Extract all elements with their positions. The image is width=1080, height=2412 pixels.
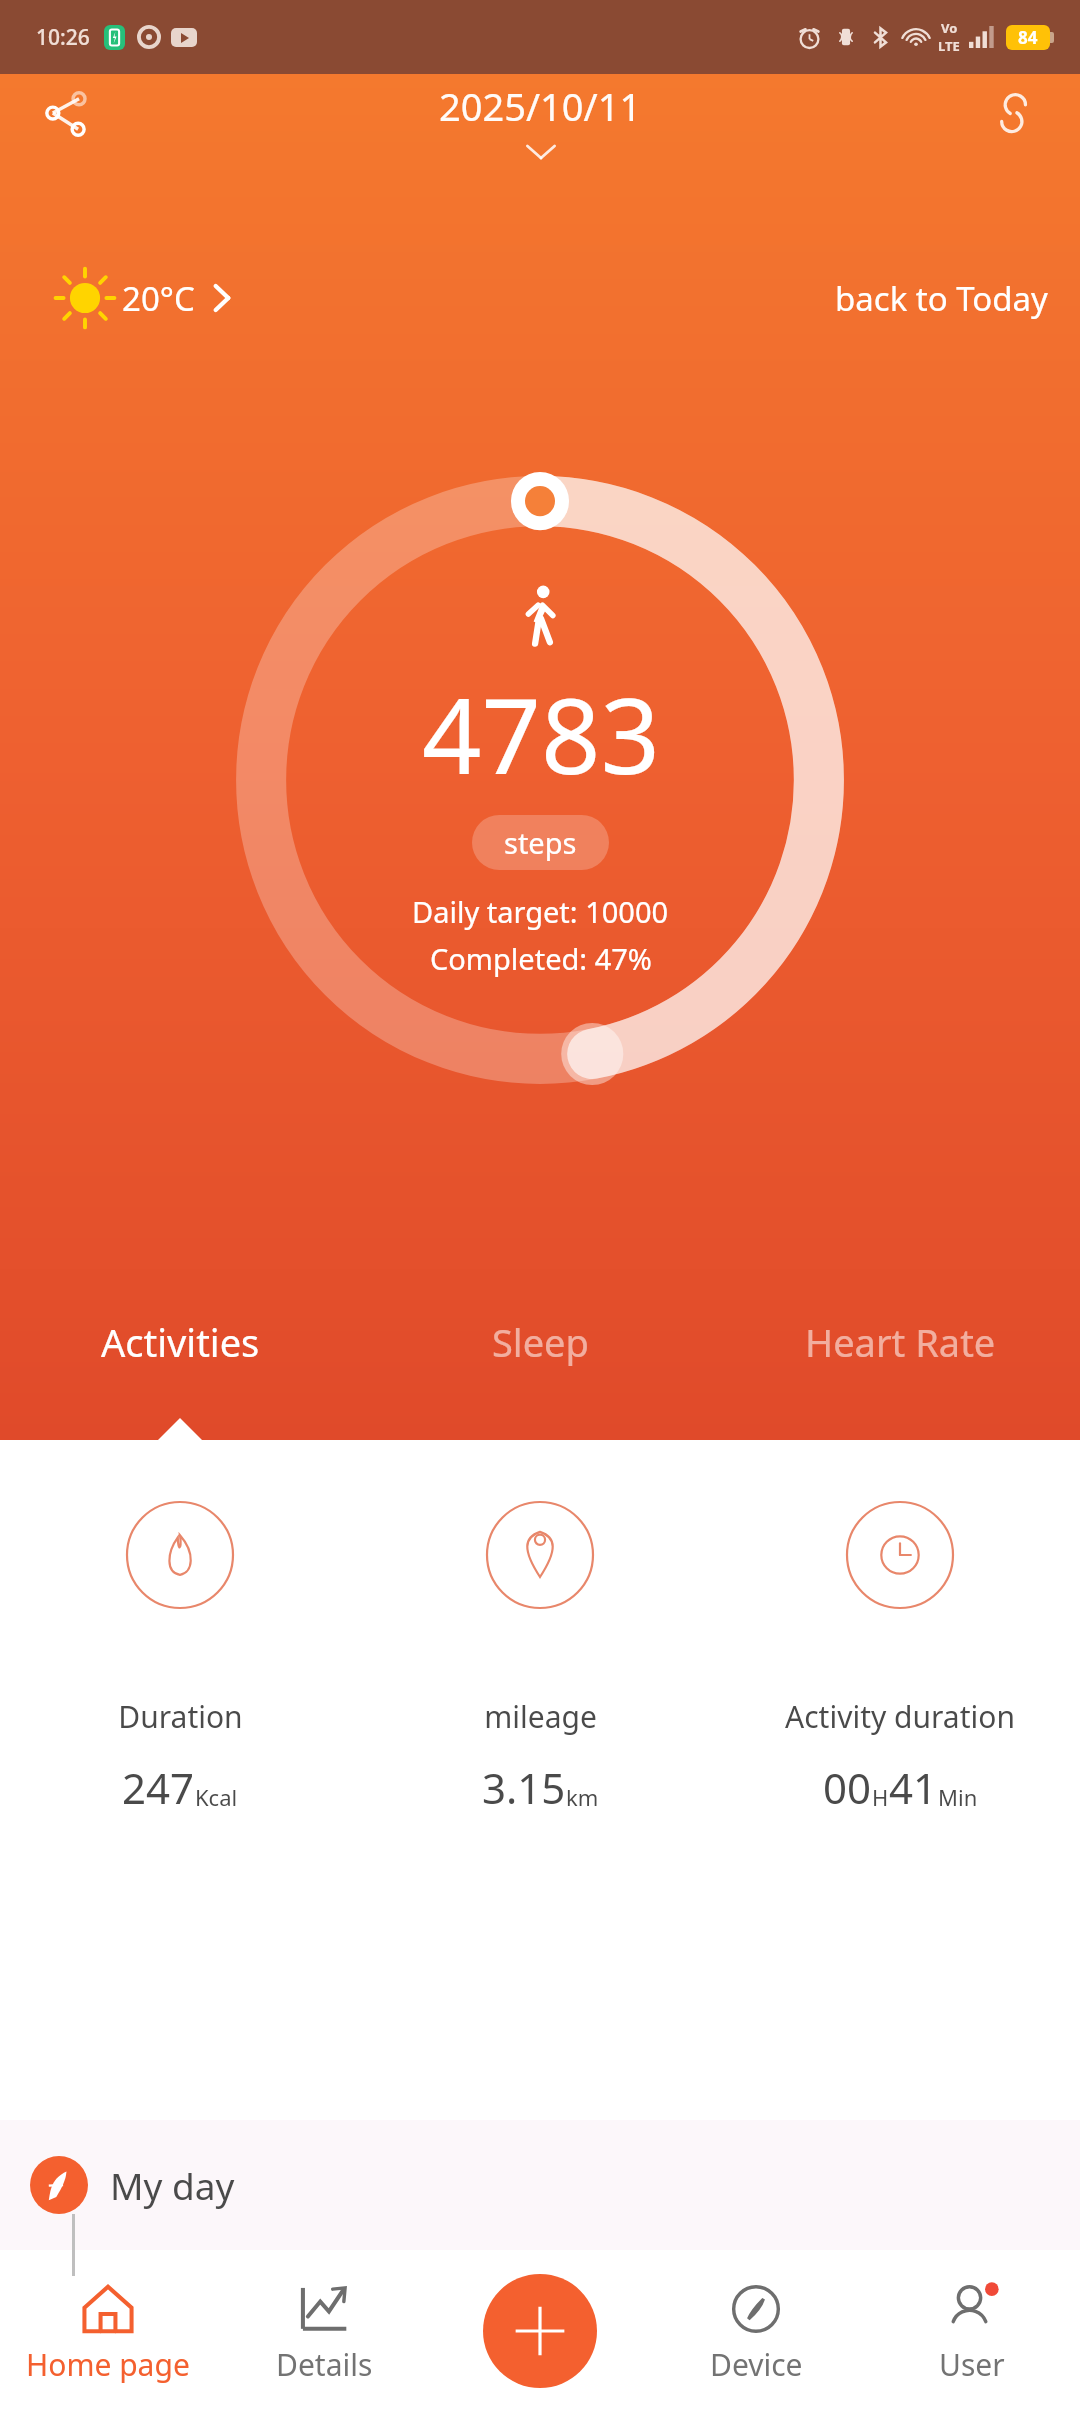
staticText: Min xyxy=(938,1782,978,1812)
button[interactable]: Activity duration xyxy=(720,1500,1080,1816)
staticText: 4783 xyxy=(422,663,660,805)
staticText: back to Today xyxy=(835,276,1048,321)
staticText: Sleep xyxy=(492,1316,589,1368)
button[interactable]: Step progress 4783 steps xyxy=(206,446,874,1114)
staticText: Vo xyxy=(941,19,958,37)
staticText: steps xyxy=(504,823,577,862)
staticText: User xyxy=(939,2344,1005,2385)
button[interactable]: Share xyxy=(32,78,104,150)
button[interactable]: Device xyxy=(648,2250,864,2412)
button[interactable]: Home page xyxy=(0,2250,216,2412)
button[interactable]: 20°C xyxy=(56,269,231,327)
staticText: LTE xyxy=(938,37,960,55)
staticText: Kcal xyxy=(195,1782,238,1812)
staticText: Home page xyxy=(26,2344,190,2385)
button[interactable]: back to Today xyxy=(831,270,1052,327)
button[interactable]: User xyxy=(864,2250,1080,2412)
staticText: mileage xyxy=(484,1696,597,1737)
staticText: Duration xyxy=(118,1696,243,1737)
staticText: 3.15 xyxy=(482,1759,566,1816)
staticText: Activities xyxy=(101,1316,260,1368)
button[interactable]: Activities xyxy=(0,1290,360,1440)
button[interactable]: Heart Rate xyxy=(720,1290,1080,1440)
button[interactable]: mileage xyxy=(360,1500,720,1816)
staticText: 84 xyxy=(1018,26,1038,49)
button[interactable]: Add xyxy=(483,2274,597,2388)
button[interactable]: Sleep xyxy=(360,1290,720,1440)
staticText: 10:26 xyxy=(36,23,90,52)
staticText: 00 xyxy=(823,1759,872,1816)
staticText: Completed: 47% xyxy=(430,939,652,978)
button[interactable]: Details xyxy=(216,2250,432,2412)
staticText: My day xyxy=(110,2160,235,2210)
staticText: 2025/10/11 xyxy=(439,80,642,132)
staticText: km xyxy=(566,1782,599,1812)
staticText: Daily target: 10000 xyxy=(412,892,669,931)
button[interactable]: My day xyxy=(30,2120,1080,2250)
staticText: Activity duration xyxy=(785,1696,1015,1737)
staticText: H xyxy=(872,1782,889,1812)
staticText: Device xyxy=(710,2344,803,2385)
staticText: Details xyxy=(276,2344,373,2385)
staticText: Heart Rate xyxy=(805,1316,996,1368)
button[interactable]: 2025/10/11 xyxy=(439,80,642,162)
staticText: 41 xyxy=(889,1759,938,1816)
staticText: 247 xyxy=(122,1759,195,1816)
button[interactable]: Duration xyxy=(0,1500,360,1816)
button[interactable]: Connected device xyxy=(978,78,1050,150)
staticText: 20°C xyxy=(122,276,195,321)
